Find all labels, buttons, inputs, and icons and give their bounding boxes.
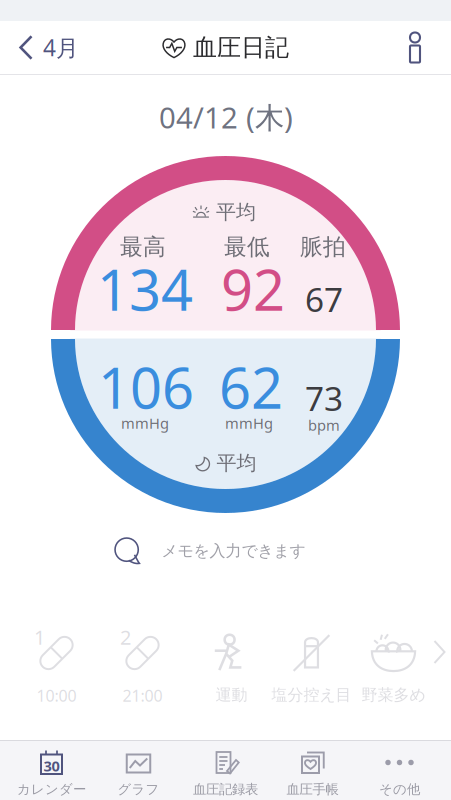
staticText: 134 [97, 252, 193, 326]
staticText: mmHg [121, 413, 169, 433]
staticText: 30 [43, 756, 59, 775]
staticText: メモを入力できます [161, 541, 305, 561]
button[interactable]: Info [384, 21, 451, 74]
staticText: 野菜多め [361, 685, 425, 705]
staticText: グラフ [117, 781, 159, 797]
staticText: 1 [34, 624, 45, 650]
staticText: 血圧手帳 [286, 781, 338, 797]
staticText: 最高 [120, 233, 166, 261]
button[interactable]: 血圧記録表 [182, 741, 269, 800]
button[interactable]: メモを入力できます [0, 529, 451, 573]
staticText: 平均 [216, 451, 256, 475]
staticText: 21:00 [122, 685, 162, 706]
staticText: 平均 [216, 200, 256, 224]
staticText: 106 [98, 350, 194, 424]
button[interactable]: 1 [11, 631, 101, 713]
staticText: 10:00 [36, 685, 76, 706]
button[interactable]: 運動 [186, 631, 276, 713]
button[interactable]: その他 [356, 741, 443, 800]
button[interactable]: 血圧手帳 [269, 741, 356, 800]
staticText: 血圧記録表 [193, 781, 258, 797]
staticText: 2 [120, 624, 131, 650]
button[interactable]: 塩分控え目 [266, 631, 356, 713]
button[interactable]: 4月 [0, 21, 91, 74]
staticText: 脈拍 [300, 233, 346, 261]
staticText: 73 [305, 376, 343, 420]
staticText: 塩分控え目 [271, 685, 351, 705]
staticText: 67 [305, 277, 343, 321]
button[interactable]: 野菜多め [348, 631, 438, 713]
button[interactable]: More tags [425, 611, 451, 693]
staticText: 運動 [215, 685, 247, 705]
staticText: その他 [379, 781, 420, 797]
staticText: カレンダー [17, 781, 86, 797]
staticText: bpm [308, 415, 340, 435]
staticText: 血圧日記 [193, 33, 289, 62]
staticText: 4月 [43, 32, 79, 62]
staticText: 最低 [224, 233, 270, 261]
staticText: 62 [219, 350, 283, 424]
button[interactable]: 2 [97, 631, 187, 713]
staticText: 92 [221, 252, 285, 326]
button[interactable]: 30 [8, 741, 95, 800]
staticText: 04/12 (木) [159, 97, 293, 136]
button[interactable]: グラフ [95, 741, 182, 800]
staticText: mmHg [225, 413, 273, 433]
